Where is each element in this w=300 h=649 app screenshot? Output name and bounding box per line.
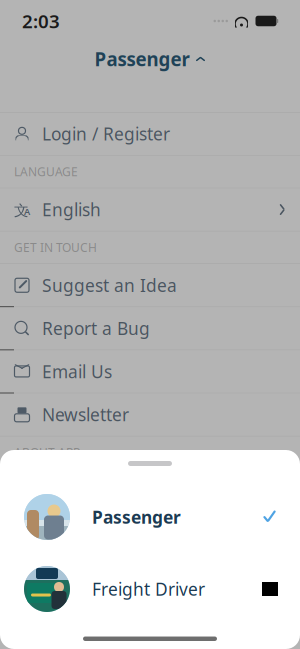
button[interactable]: Report a Bug <box>0 307 300 350</box>
staticText: Freight Driver <box>92 577 205 600</box>
staticText: Passenger <box>94 47 189 71</box>
button[interactable]: Suggest an Idea <box>0 264 300 306</box>
button[interactable]: Email Us <box>0 350 300 393</box>
button[interactable]: Freight Driver <box>0 553 300 625</box>
staticText: Login / Register <box>42 122 170 145</box>
staticText: Passenger <box>92 505 181 528</box>
staticText: 文 <box>14 201 29 219</box>
button[interactable]: Login / Register <box>0 113 300 155</box>
button[interactable]: Passenger <box>94 44 205 74</box>
button[interactable]: Passenger <box>0 481 300 553</box>
button[interactable]: 文 <box>0 188 300 231</box>
staticText: English <box>42 198 101 221</box>
staticText: Report a Bug <box>42 317 150 340</box>
staticText: ABOUT APP <box>14 444 80 460</box>
staticText: Newsletter <box>42 403 129 426</box>
staticText: Suggest an Idea <box>42 274 177 297</box>
staticText: LANGUAGE <box>14 164 78 180</box>
button[interactable]: Newsletter <box>0 393 300 436</box>
staticText: A <box>24 205 30 218</box>
staticText: Email Us <box>42 360 112 383</box>
staticText: 2:03 <box>22 9 60 33</box>
staticText: GET IN TOUCH <box>14 239 97 255</box>
